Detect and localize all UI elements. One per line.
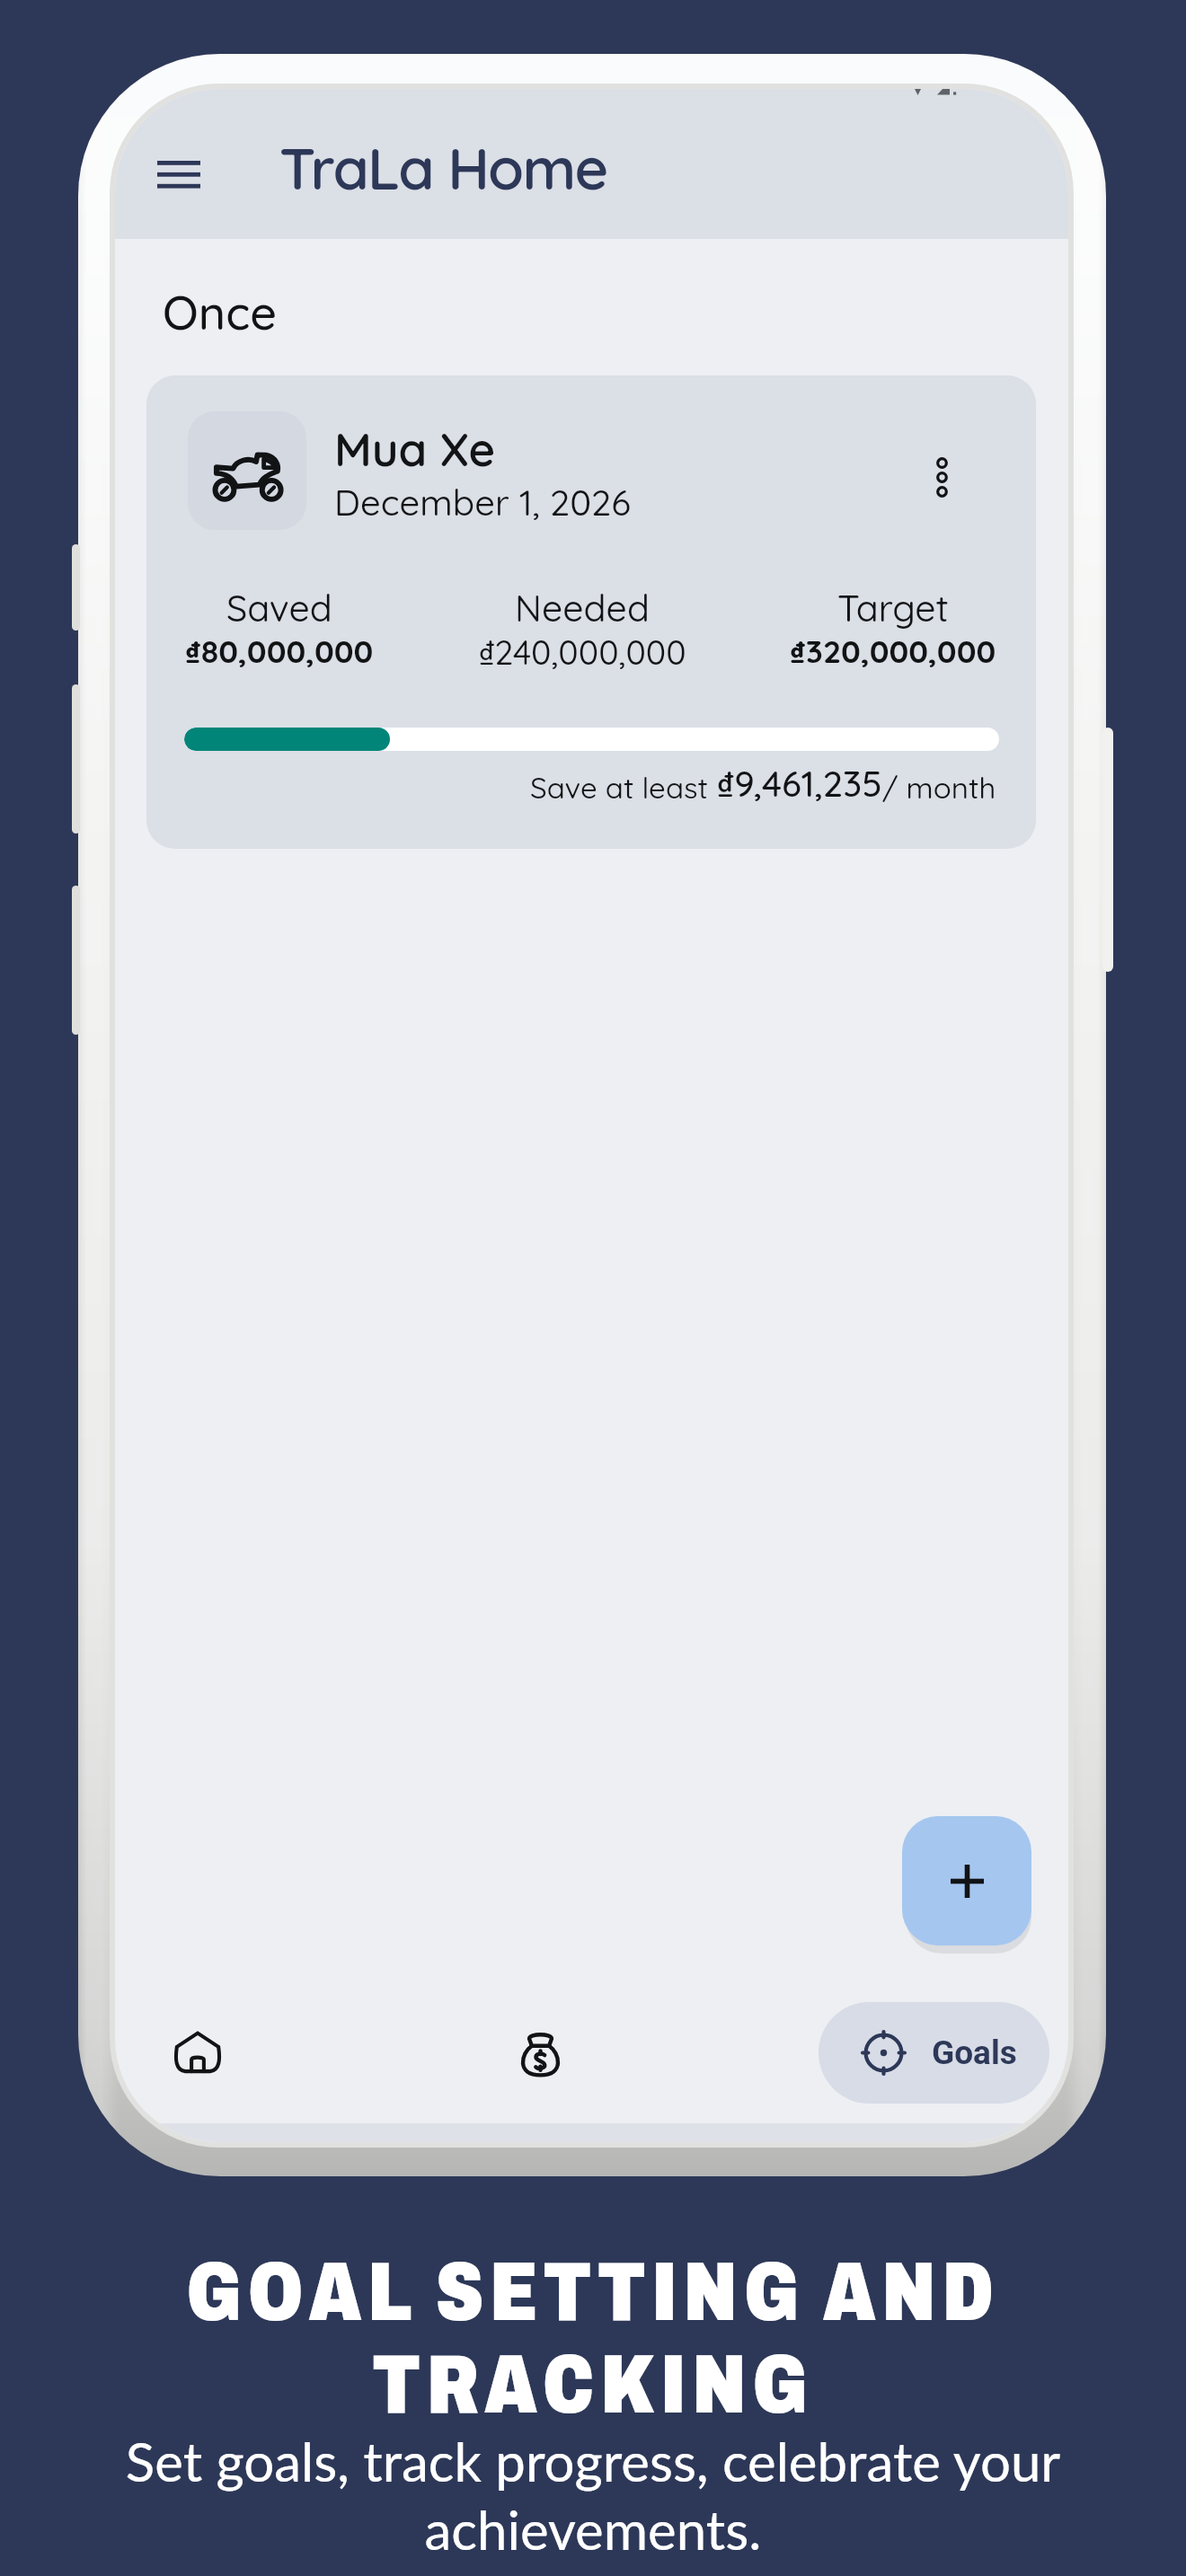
staticText: Set goals, track progress, celebrate you… (0, 2429, 1186, 2561)
staticText: ₫320,000,000 (790, 631, 996, 670)
staticText: GOAL SETTING AND TRACKING (0, 2246, 1186, 2430)
button[interactable]: Add new goal (902, 1816, 1031, 1945)
staticText: TraLa Home (279, 131, 607, 204)
staticText: Save at least (530, 769, 717, 806)
staticText: ₫9,461,235 (717, 761, 882, 806)
staticText: Saved (226, 585, 332, 631)
staticText: Mua Xe (334, 420, 496, 478)
staticText: Target (837, 585, 949, 631)
button[interactable]: More options (906, 432, 978, 522)
button[interactable]: Home (135, 2002, 261, 2103)
staticText: Goals (932, 2033, 1017, 2072)
staticText: December 1, 2026 (334, 480, 631, 525)
button[interactable]: Mua Xe (146, 375, 1036, 849)
staticText: ₫240,000,000 (479, 631, 686, 673)
staticText: / month (882, 769, 996, 806)
button[interactable]: Goals (819, 2002, 1049, 2104)
button[interactable]: Budgets (477, 2002, 603, 2103)
button[interactable]: Open navigation menu (136, 139, 222, 209)
staticText: Needed (515, 585, 650, 631)
staticText: ₫80,000,000 (185, 631, 374, 670)
staticText: Once (163, 283, 278, 341)
